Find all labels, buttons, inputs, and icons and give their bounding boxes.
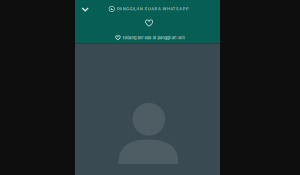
staticText: sedang berada di panggilan lain bbox=[122, 35, 184, 40]
staticText: PANGGILAN SUARA WHATSAPP bbox=[117, 6, 189, 11]
button[interactable]: Minimize call bbox=[75, 2, 95, 16]
